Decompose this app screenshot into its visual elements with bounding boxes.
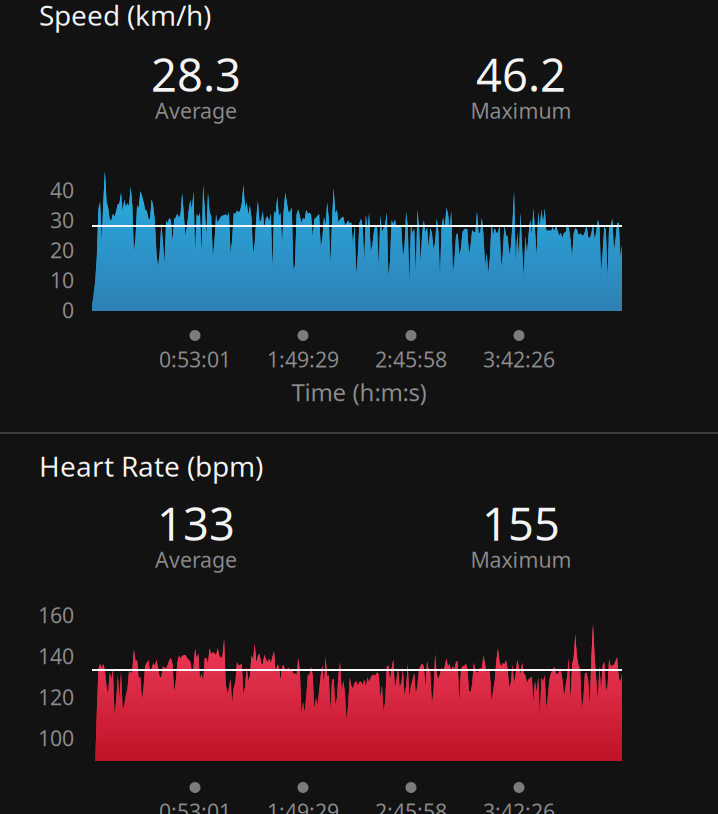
staticText: 40: [50, 176, 74, 204]
staticText: 3:42:26: [483, 797, 555, 814]
button[interactable]: 3:42:26: [467, 782, 571, 814]
button[interactable]: Speed chart: [92, 171, 622, 311]
staticText: 30: [50, 206, 74, 234]
button[interactable]: 0:53:01: [143, 330, 247, 374]
staticText: 100: [38, 724, 74, 752]
staticText: Average: [155, 545, 237, 573]
button[interactable]: 155: [391, 493, 651, 565]
button[interactable]: 133: [66, 493, 326, 565]
staticText: 120: [38, 683, 74, 711]
staticText: Time (h:m:s): [291, 376, 426, 408]
button[interactable]: 46.2: [391, 44, 651, 116]
button[interactable]: Speed (km/h): [39, 0, 339, 32]
staticText: 0:53:01: [159, 797, 231, 814]
button[interactable]: Heart Rate (bpm): [39, 449, 339, 483]
staticText: Heart Rate (bpm): [39, 447, 263, 485]
staticText: Speed (km/h): [39, 0, 211, 34]
staticText: 133: [157, 493, 235, 553]
staticText: 20: [50, 236, 74, 264]
button[interactable]: 0:53:01: [143, 782, 247, 814]
staticText: 160: [38, 601, 74, 629]
staticText: Average: [155, 96, 237, 124]
staticText: 28.3: [151, 44, 241, 104]
button[interactable]: 1:49:29: [251, 782, 355, 814]
staticText: 0:53:01: [159, 345, 231, 373]
staticText: Maximum: [470, 96, 571, 124]
button[interactable]: 2:45:58: [359, 330, 463, 374]
button[interactable]: 28.3: [66, 44, 326, 116]
staticText: 155: [482, 493, 560, 553]
button[interactable]: 3:42:26: [467, 330, 571, 374]
button[interactable]: Heart rate chart: [92, 618, 622, 761]
staticText: 1:49:29: [267, 797, 339, 814]
staticText: Maximum: [470, 545, 571, 573]
button[interactable]: 1:49:29: [251, 330, 355, 374]
staticText: 2:45:58: [375, 345, 447, 373]
staticText: 1:49:29: [267, 345, 339, 373]
button[interactable]: 2:45:58: [359, 782, 463, 814]
staticText: 0: [62, 296, 74, 324]
staticText: 2:45:58: [375, 797, 447, 814]
staticText: 3:42:26: [483, 345, 555, 373]
staticText: 10: [50, 266, 74, 294]
staticText: 140: [38, 642, 74, 670]
staticText: 46.2: [476, 44, 566, 104]
